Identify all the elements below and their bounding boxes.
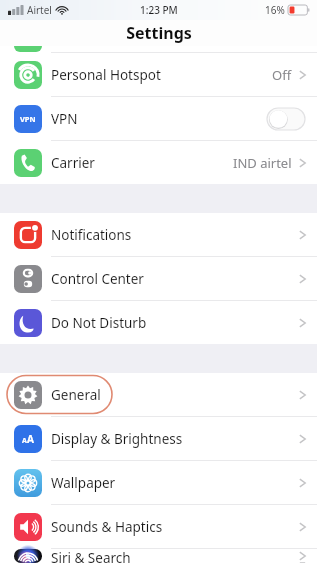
staticText: 16% (265, 3, 285, 17)
button[interactable]: Control Center (0, 257, 317, 300)
button[interactable]: Wallpaper (0, 461, 317, 504)
button[interactable]: A (0, 417, 317, 460)
staticText: Siri & Search (51, 549, 299, 563)
button[interactable]: Notifications (0, 213, 317, 256)
staticText: VPN (20, 114, 36, 124)
staticText: General (51, 386, 299, 404)
button[interactable]: Siri & Search (0, 549, 317, 563)
button[interactable]: Personal Hotspot (0, 53, 317, 96)
staticText: Airtel (27, 3, 52, 17)
staticText: 1:23 PM (140, 3, 178, 17)
staticText: Carrier (51, 154, 233, 172)
button[interactable]: Sounds & Haptics (0, 505, 317, 548)
staticText: Do Not Disturb (51, 314, 299, 332)
button[interactable]: VPN (0, 97, 317, 140)
staticText: Personal Hotspot (51, 66, 272, 84)
staticText: Display & Brightness (51, 430, 299, 448)
button[interactable]: Do Not Disturb (0, 301, 317, 344)
staticText: IND airtel (233, 154, 292, 172)
staticText: Settings (126, 22, 192, 44)
button[interactable]: General (0, 373, 317, 416)
button[interactable]: Carrier (0, 141, 317, 184)
staticText: VPN (51, 110, 267, 128)
staticText: Control Center (51, 270, 299, 288)
staticText: Sounds & Haptics (51, 518, 299, 536)
staticText: Wallpaper (51, 474, 299, 492)
staticText: Off (272, 66, 292, 84)
staticText: A (22, 436, 27, 446)
staticText: A (27, 432, 34, 446)
staticText: Notifications (51, 226, 299, 244)
